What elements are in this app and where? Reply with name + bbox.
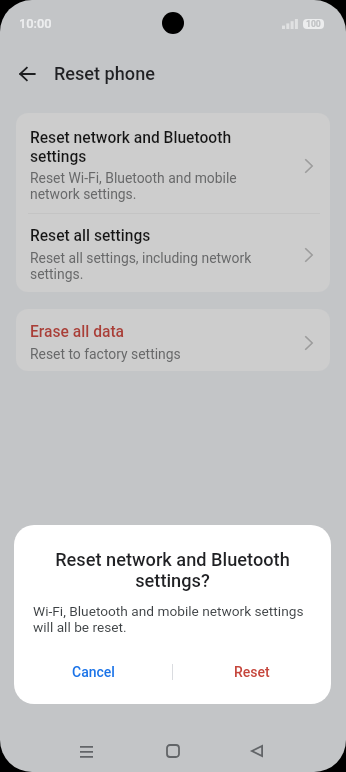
- button[interactable]: Reset all settings: [16, 214, 330, 292]
- staticText: Cancel: [72, 664, 115, 680]
- staticText: Reset to factory settings: [30, 346, 181, 362]
- staticText: Reset: [234, 664, 270, 680]
- staticText: Reset Wi-Fi, Bluetooth and mobile networ…: [30, 170, 258, 202]
- staticText: Reset all settings: [30, 227, 151, 245]
- button[interactable]: Home: [149, 731, 197, 771]
- staticText: Reset network and Bluetooth settings?: [40, 549, 305, 591]
- staticText: Reset network and Bluetooth settings: [30, 129, 258, 165]
- staticText: Reset all settings, including network se…: [30, 250, 258, 282]
- button[interactable]: Reset network and Bluetooth settings: [16, 113, 330, 213]
- button[interactable]: Back: [12, 58, 44, 90]
- button[interactable]: Cancel: [14, 653, 172, 691]
- staticText: 100: [306, 19, 321, 29]
- button[interactable]: Reset: [173, 653, 331, 691]
- staticText: Wi-Fi, Bluetooth and mobile network sett…: [33, 603, 315, 636]
- staticText: 10:00: [19, 16, 52, 31]
- button[interactable]: Recents: [62, 731, 110, 771]
- button[interactable]: Back: [233, 731, 281, 771]
- staticText: Reset phone: [54, 63, 155, 84]
- button[interactable]: Erase all data: [16, 309, 330, 371]
- staticText: Erase all data: [30, 323, 125, 341]
